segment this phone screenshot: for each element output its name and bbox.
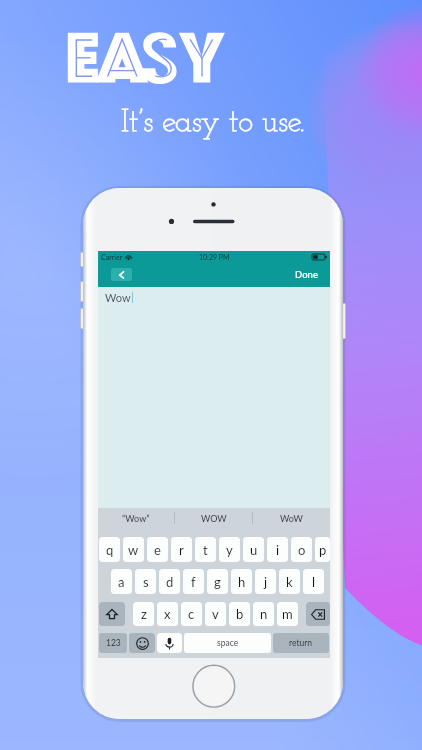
button[interactable]: g: [207, 569, 228, 594]
button[interactable]: z: [133, 602, 154, 626]
button[interactable]: h: [231, 569, 252, 594]
button[interactable]: l: [303, 569, 324, 594]
button[interactable]: Dictation: [157, 633, 182, 653]
staticText: o: [298, 542, 306, 558]
button[interactable]: t: [195, 537, 216, 562]
staticText: j: [264, 574, 268, 590]
staticText: 123: [106, 638, 121, 648]
button[interactable]: WoW: [253, 508, 330, 528]
button[interactable]: “Wow”: [98, 508, 174, 528]
button[interactable]: p: [315, 537, 330, 562]
button[interactable]: x: [157, 602, 178, 626]
staticText: Carrier: [101, 253, 123, 261]
button[interactable]: m: [277, 602, 298, 626]
button[interactable]: Shift: [99, 602, 125, 626]
staticText: space: [217, 638, 239, 648]
button[interactable]: i: [267, 537, 288, 562]
button[interactable]: j: [255, 569, 276, 594]
button[interactable]: Done: [291, 267, 322, 282]
staticText: return: [289, 638, 313, 648]
staticText: r: [179, 542, 184, 558]
staticText: l: [312, 574, 316, 590]
button[interactable]: e: [147, 537, 168, 562]
staticText: d: [166, 574, 174, 590]
staticText: a: [118, 574, 125, 590]
staticText: u: [250, 542, 258, 558]
staticText: WoW: [280, 513, 303, 524]
staticText: Done: [295, 269, 318, 280]
staticText: w: [128, 542, 139, 558]
button[interactable]: Emoji: [129, 633, 155, 653]
staticText: n: [260, 606, 268, 622]
staticText: g: [214, 574, 221, 590]
staticText: y: [226, 542, 233, 558]
staticText: Wow: [105, 291, 131, 304]
button[interactable]: return: [273, 633, 329, 653]
staticText: b: [236, 606, 244, 622]
button[interactable]: y: [219, 537, 240, 562]
button[interactable]: r: [171, 537, 192, 562]
button[interactable]: q: [99, 537, 120, 562]
button[interactable]: b: [229, 602, 250, 626]
staticText: h: [238, 574, 246, 590]
staticText: It’s easy to use.: [121, 108, 305, 139]
button[interactable]: 123: [99, 633, 127, 653]
button[interactable]: u: [243, 537, 264, 562]
staticText: z: [141, 606, 147, 622]
staticText: “Wow”: [122, 513, 150, 524]
staticText: e: [154, 542, 161, 558]
button[interactable]: c: [181, 602, 202, 626]
button[interactable]: a: [111, 569, 132, 594]
button[interactable]: f: [183, 569, 204, 594]
button[interactable]: Backspace: [306, 602, 330, 626]
staticText: i: [276, 542, 280, 558]
staticText: q: [106, 542, 114, 558]
button[interactable]: n: [253, 602, 274, 626]
button[interactable]: WOW: [175, 508, 252, 528]
staticText: v: [212, 606, 219, 622]
staticText: x: [164, 606, 171, 622]
button[interactable]: d: [159, 569, 180, 594]
staticText: 10:29 PM: [199, 253, 230, 261]
button[interactable]: o: [291, 537, 312, 562]
button[interactable]: space: [184, 633, 271, 653]
staticText: c: [188, 606, 195, 622]
staticText: k: [286, 574, 293, 590]
staticText: WOW: [201, 513, 227, 524]
staticText: t: [203, 542, 208, 558]
staticText: s: [143, 574, 149, 590]
button[interactable]: s: [135, 569, 156, 594]
staticText: m: [282, 606, 293, 622]
button[interactable]: w: [123, 537, 144, 562]
button[interactable]: Back: [111, 268, 132, 281]
button[interactable]: k: [279, 569, 300, 594]
staticText: f: [191, 574, 196, 590]
button[interactable]: v: [205, 602, 226, 626]
staticText: p: [319, 542, 327, 558]
